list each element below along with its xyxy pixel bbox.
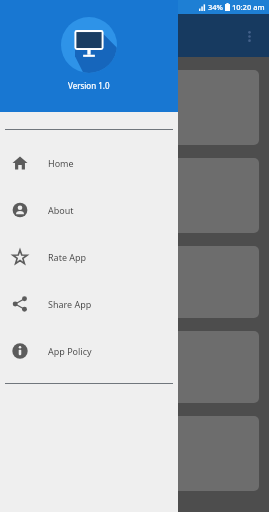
staticText: App Policy xyxy=(48,345,92,357)
staticText: 10:20 am xyxy=(232,2,265,12)
button[interactable]: Share App xyxy=(0,280,178,327)
button[interactable]: Rate App xyxy=(0,233,178,280)
staticText: Introduction on Computer xyxy=(24,106,100,132)
staticText: Version 1.0 xyxy=(68,80,110,91)
staticText: Keyboard and Mouse Skill xyxy=(24,194,91,220)
button[interactable]: About xyxy=(0,186,178,233)
button[interactable]: Introduction on Computer xyxy=(10,70,259,145)
button[interactable]: App Policy xyxy=(0,327,178,374)
button[interactable]: Productivity Using ICT xyxy=(10,246,259,318)
staticText: Share App xyxy=(48,298,92,310)
staticText: Rate App xyxy=(48,251,87,263)
button[interactable]: Home xyxy=(0,139,178,186)
staticText: About xyxy=(48,204,74,216)
button[interactable]: Intellectual Property xyxy=(10,416,259,491)
button[interactable]: Computer Virus xyxy=(10,331,259,403)
button[interactable]: More options xyxy=(235,22,263,50)
staticText: Home xyxy=(48,157,74,169)
staticText: 34% xyxy=(208,2,223,12)
button[interactable]: Keyboard and Mouse Skill xyxy=(10,158,259,233)
